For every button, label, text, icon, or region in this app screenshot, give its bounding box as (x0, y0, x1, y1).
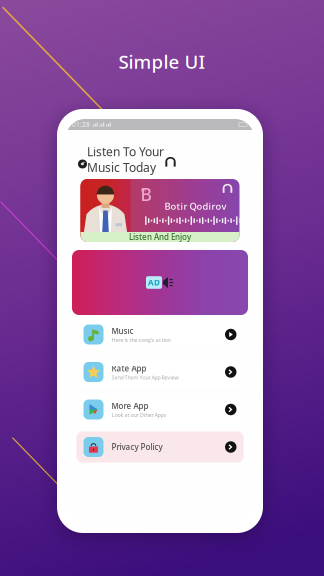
staticText: Rate App (111, 363, 146, 374)
staticText: Botir Qodirov (164, 200, 226, 212)
button[interactable]: Advertisement (72, 250, 248, 315)
button[interactable]: Music (76, 319, 243, 350)
button[interactable]: Privacy Policy (76, 431, 243, 462)
button[interactable]: More App (76, 394, 243, 425)
staticText: Simple UI (118, 49, 205, 74)
staticText: Look at our Other Apps (111, 411, 166, 418)
staticText: B (140, 183, 151, 206)
staticText: Listen To Your (87, 144, 164, 159)
staticText: Send Them Your App Review (111, 374, 178, 381)
staticText: Here is the song's action (111, 336, 170, 343)
staticText: Music Today (87, 159, 156, 175)
staticText: Listen And Enjoy (129, 232, 191, 242)
staticText: AD (148, 277, 160, 288)
staticText: 01:28 (72, 120, 90, 129)
button[interactable]: Rate App (76, 356, 243, 387)
staticText: More App (111, 401, 148, 411)
staticText: Music (111, 326, 133, 336)
staticText: Privacy Policy (111, 442, 162, 452)
